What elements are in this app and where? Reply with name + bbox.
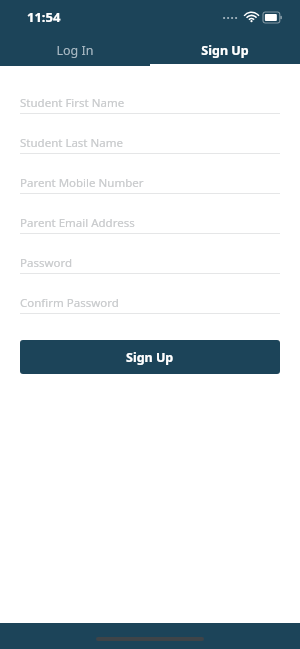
staticText: Password	[20, 255, 73, 271]
button[interactable]: Log In	[0, 34, 150, 66]
staticText: Student Last Name	[20, 135, 123, 151]
button[interactable]: Sign Up	[20, 340, 280, 374]
button[interactable]: Password	[20, 253, 280, 272]
button[interactable]: Student First Name	[20, 93, 280, 112]
button[interactable]: Parent Mobile Number	[20, 173, 280, 192]
staticText: Parent Mobile Number	[20, 175, 144, 191]
staticText: Confirm Password	[20, 295, 119, 311]
button[interactable]: Confirm Password	[20, 293, 280, 312]
staticText: 11:54	[27, 8, 61, 26]
staticText: Parent Email Address	[20, 215, 135, 231]
button[interactable]: Sign Up	[150, 34, 300, 66]
staticText: Sign Up	[126, 349, 174, 366]
staticText: Sign Up	[201, 42, 249, 59]
button[interactable]: Parent Email Address	[20, 213, 280, 232]
staticText: Student First Name	[20, 95, 125, 111]
button[interactable]: Student Last Name	[20, 133, 280, 152]
staticText: Log In	[56, 42, 94, 59]
